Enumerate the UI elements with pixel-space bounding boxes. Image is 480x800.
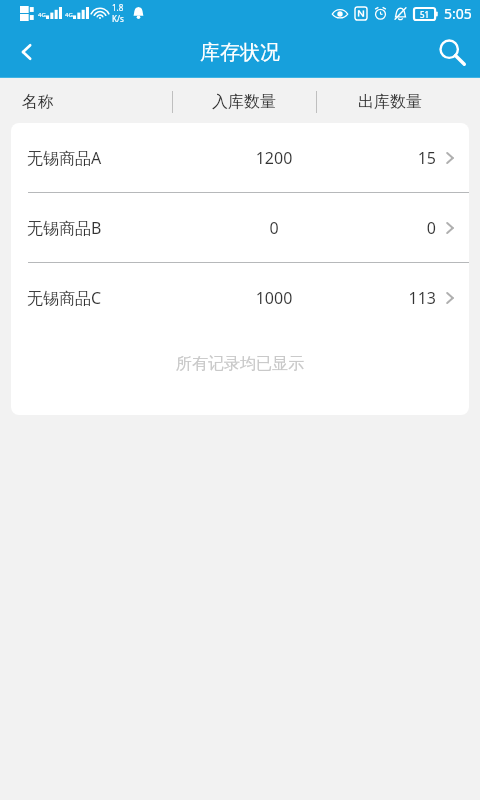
staticText: 113 — [408, 287, 436, 309]
staticText: 1200 — [217, 147, 331, 169]
staticText: 库存状况 — [200, 40, 280, 65]
staticText: 5:05 — [444, 4, 472, 23]
staticText: 0 — [217, 217, 331, 239]
staticText: 51 — [420, 9, 430, 20]
button[interactable]: 无锡商品B — [11, 193, 469, 262]
staticText: 入库数量 — [188, 92, 300, 112]
staticText: 0 — [426, 217, 436, 239]
staticText: K/s — [112, 13, 124, 24]
staticText: 名称 — [22, 92, 54, 112]
staticText: 出库数量 — [332, 92, 448, 112]
button[interactable]: 无锡商品C — [11, 263, 469, 332]
staticText: 4G — [38, 11, 46, 19]
button[interactable]: Search — [424, 26, 480, 78]
button[interactable]: Back — [0, 26, 54, 78]
staticText: 所有记录均已显示 — [176, 354, 304, 374]
button[interactable]: 无锡商品A — [11, 123, 469, 192]
staticText: 1.8 — [112, 2, 124, 13]
staticText: 1000 — [217, 287, 331, 309]
staticText: 4G — [65, 11, 73, 19]
staticText: 无锡商品C — [27, 287, 102, 309]
staticText: 15 — [417, 147, 436, 169]
staticText: 无锡商品A — [27, 147, 102, 169]
staticText: 无锡商品B — [27, 217, 102, 239]
